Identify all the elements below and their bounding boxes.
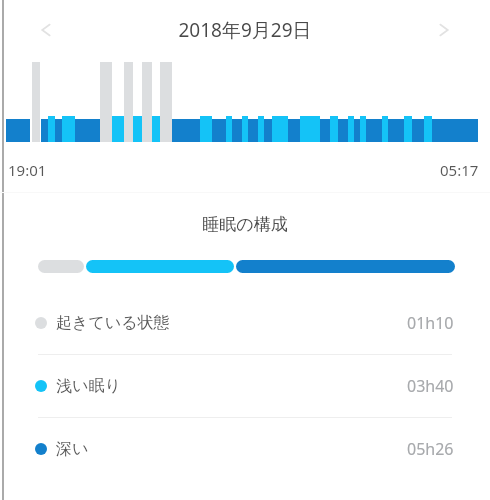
staticText: 浅い眠り — [56, 376, 121, 396]
staticText: 起きている状態 — [56, 313, 170, 333]
staticText: 睡眠の構成 — [0, 214, 490, 235]
button[interactable]: 浅い眠り — [0, 355, 490, 417]
button[interactable]: Next day — [421, 7, 467, 53]
staticText: 05:17 — [440, 160, 479, 180]
staticText: 03h40 — [407, 375, 454, 397]
button[interactable]: Previous day — [23, 7, 69, 53]
staticText: 深い — [56, 439, 89, 459]
button[interactable]: 起きている状態 — [0, 292, 490, 354]
button[interactable]: 深い — [0, 418, 490, 480]
staticText: 01h10 — [407, 312, 454, 334]
staticText: 2018年9月29日 — [178, 17, 312, 43]
staticText: 05h26 — [407, 438, 454, 460]
staticText: 19:01 — [8, 160, 47, 180]
